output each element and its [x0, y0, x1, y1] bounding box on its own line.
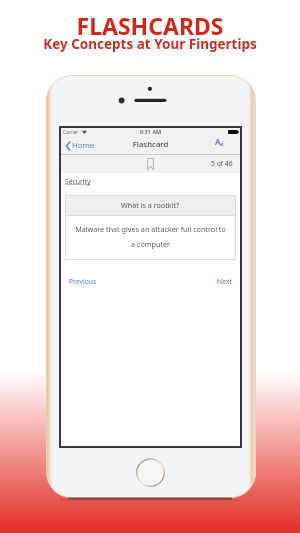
button[interactable]: Security	[65, 177, 91, 186]
button[interactable]: Text size	[212, 133, 228, 149]
staticText: Carrier	[63, 129, 79, 135]
staticText: Malware that gives an attacker full cont…	[74, 224, 227, 249]
staticText: Next	[217, 277, 232, 286]
button[interactable]: Next	[215, 275, 234, 288]
button[interactable]: Bookmark	[142, 156, 158, 172]
staticText: Flashcard	[61, 139, 240, 150]
button[interactable]: What is a rootkit?	[65, 195, 236, 260]
staticText: 9:31 AM	[61, 128, 240, 136]
staticText: A	[215, 136, 221, 147]
staticText: Previous	[69, 277, 97, 286]
staticText: a	[220, 140, 224, 147]
button[interactable]: Home	[64, 137, 97, 154]
button[interactable]: Previous	[67, 275, 99, 288]
staticText: Home	[72, 140, 95, 151]
staticText: Key Concepts at Your Fingertips	[0, 35, 300, 53]
staticText: 5 of 46	[211, 159, 233, 168]
staticText: What is a rootkit?	[121, 200, 180, 210]
staticText: FLASHCARDS	[0, 10, 300, 41]
